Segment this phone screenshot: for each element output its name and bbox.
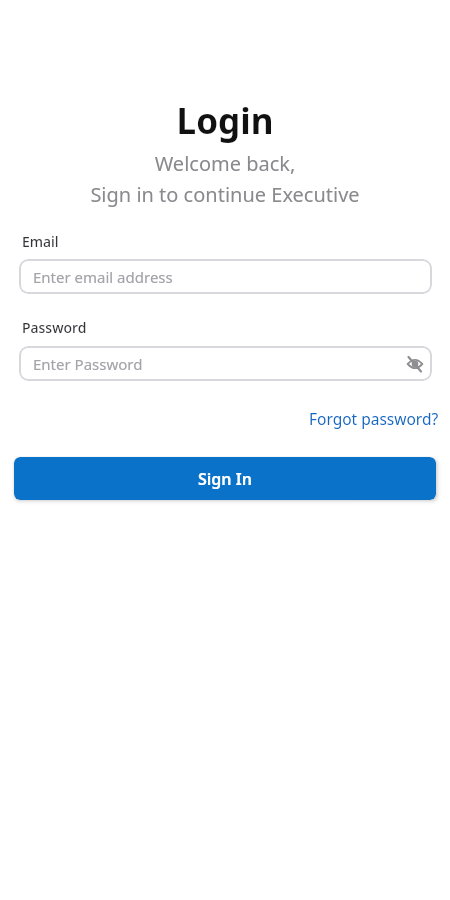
staticText: Enter email address	[33, 267, 173, 287]
button[interactable]: Enter email address	[19, 259, 432, 294]
staticText: Welcome back, Sign in to continue Execut…	[0, 150, 450, 208]
staticText: Enter Password	[33, 354, 143, 374]
staticText: Password	[22, 318, 87, 337]
button[interactable]: Sign In	[14, 457, 436, 500]
staticText: Sign In	[198, 468, 252, 490]
button[interactable]: Forgot password?	[309, 408, 439, 429]
staticText: Login	[0, 97, 450, 145]
staticText: Email	[22, 232, 59, 251]
button[interactable]: Enter Password	[19, 346, 432, 381]
